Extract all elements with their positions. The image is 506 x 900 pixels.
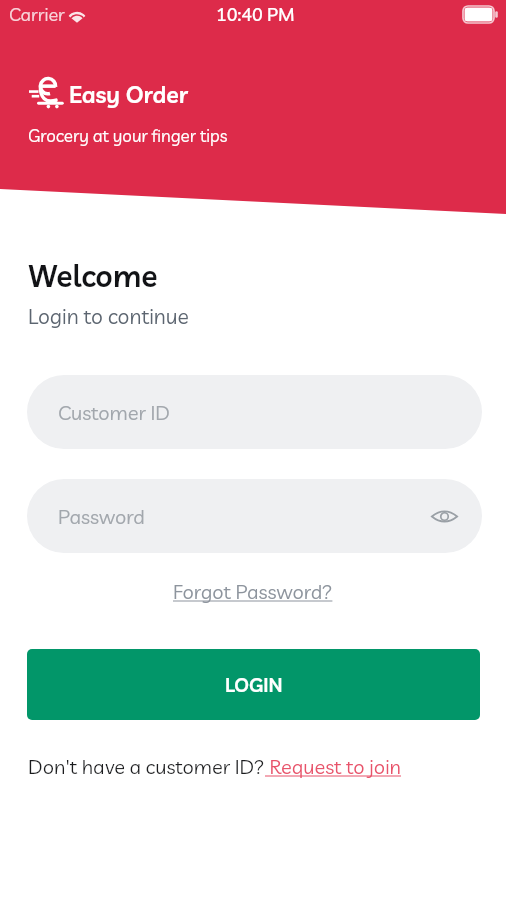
button[interactable]: Customer ID	[27, 375, 482, 449]
button[interactable]: Show password	[424, 496, 464, 536]
button[interactable]: Request to join	[265, 754, 401, 779]
button[interactable]: LOGIN	[27, 649, 480, 720]
staticText: Easy Order	[69, 80, 189, 109]
button[interactable]: Forgot Password?	[167, 574, 339, 609]
staticText: Login to continue	[28, 303, 189, 329]
other: Easy Order logo	[29, 77, 63, 108]
staticText: Customer ID	[58, 400, 170, 425]
button[interactable]: Password	[27, 479, 482, 553]
staticText: Carrier	[9, 3, 65, 26]
staticText: LOGIN	[225, 673, 283, 697]
staticText: Don't have a customer ID?	[28, 754, 265, 779]
staticText: Welcome	[28, 257, 158, 295]
staticText: Password	[58, 504, 145, 529]
staticText: Grocery at your finger tips	[28, 125, 228, 146]
staticText: 10:40 PM	[216, 3, 295, 26]
